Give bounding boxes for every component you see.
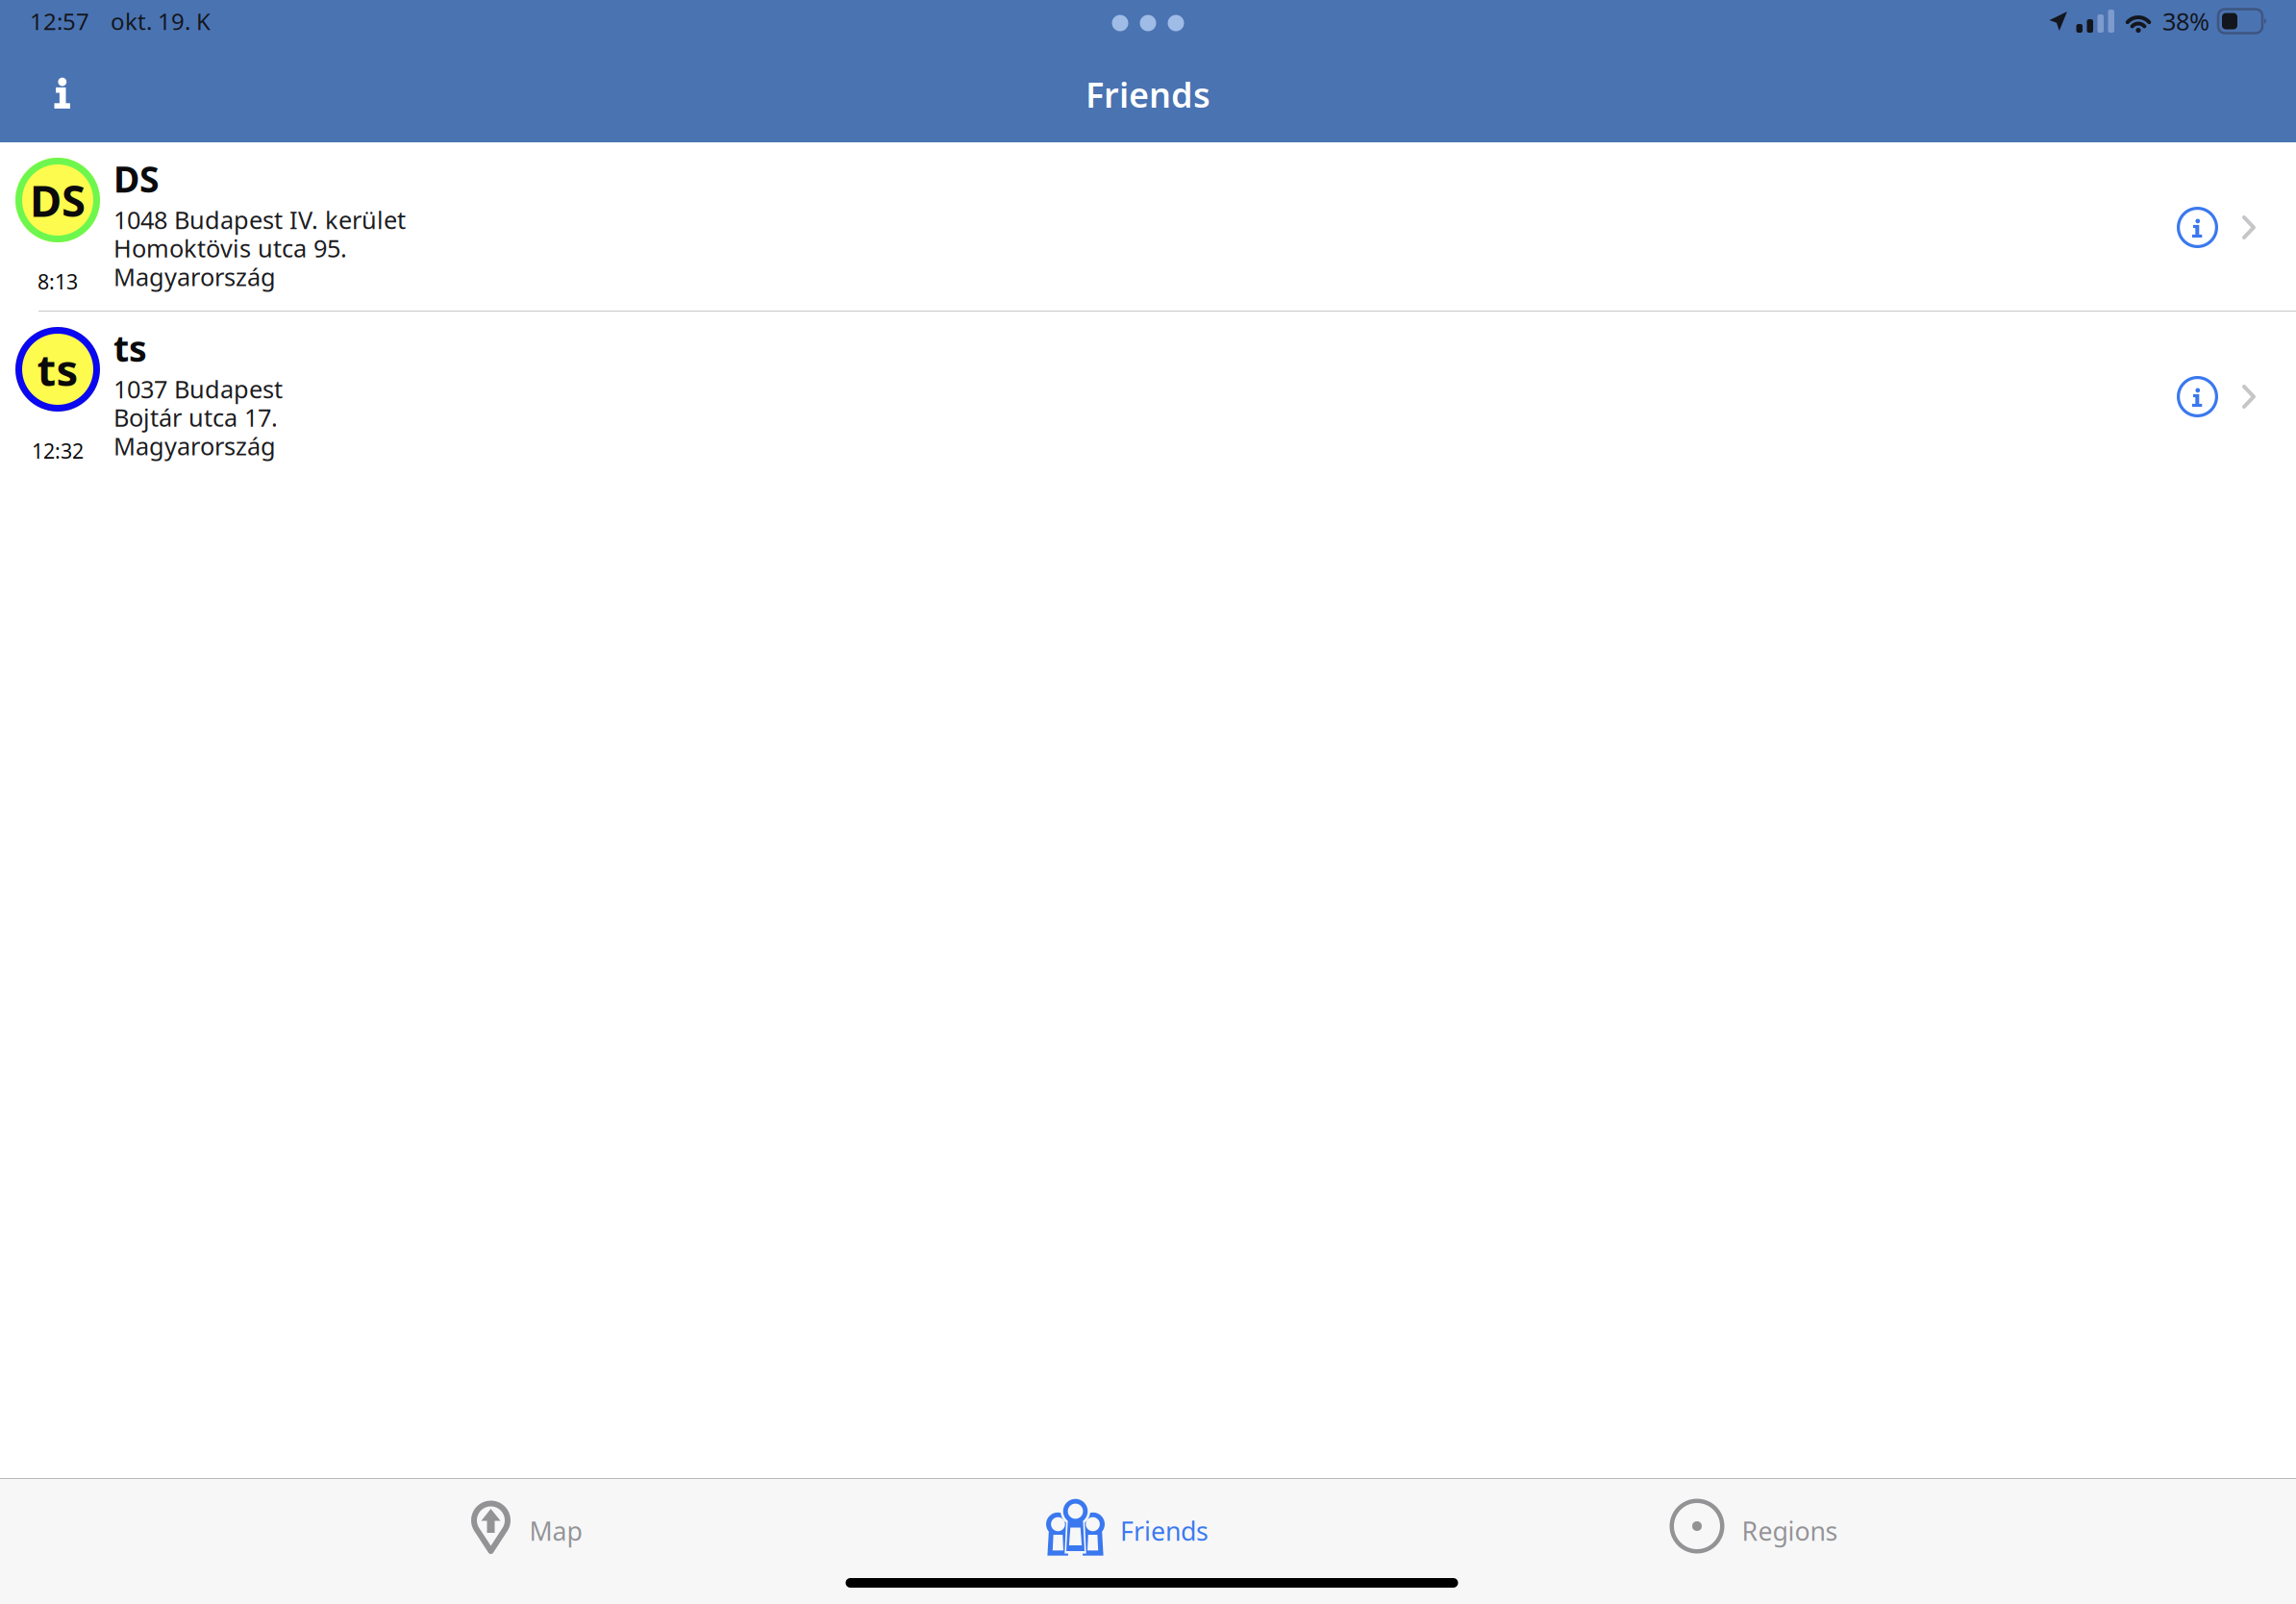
staticText: Friends (1120, 1514, 1209, 1548)
button[interactable]: More info about DS (2177, 207, 2218, 248)
staticText: ts (37, 340, 78, 398)
staticText: Magyarország (113, 430, 276, 462)
staticText: 12:32 (32, 437, 84, 464)
button[interactable]: DS (0, 142, 2296, 311)
staticText: 38% (2162, 5, 2209, 37)
button[interactable]: Friends (813, 1479, 1440, 1562)
staticText: Regions (1742, 1514, 1838, 1548)
staticText: Map (529, 1514, 582, 1548)
staticText: 1048 Budapest IV. kerület (113, 203, 406, 236)
staticText: okt. 19. K (111, 6, 211, 37)
staticText: Bojtár utca 17. (113, 401, 278, 434)
button[interactable]: Map (237, 1479, 813, 1562)
button[interactable]: Regions (1440, 1479, 2067, 1562)
button[interactable]: ts (0, 312, 2296, 480)
staticText: Friends (1086, 71, 1210, 117)
staticText: Magyarország (113, 261, 276, 293)
staticText: 12:57 (30, 6, 89, 37)
staticText: DS (30, 171, 86, 229)
staticText: DS (113, 155, 160, 203)
staticText: 8:13 (37, 268, 78, 295)
staticText: 1037 Budapest (113, 373, 283, 405)
button[interactable]: More info about ts (2177, 376, 2218, 417)
staticText: Homoktövis utca 95. (113, 232, 347, 264)
staticText: ts (113, 324, 147, 372)
button[interactable]: Info (29, 56, 96, 133)
